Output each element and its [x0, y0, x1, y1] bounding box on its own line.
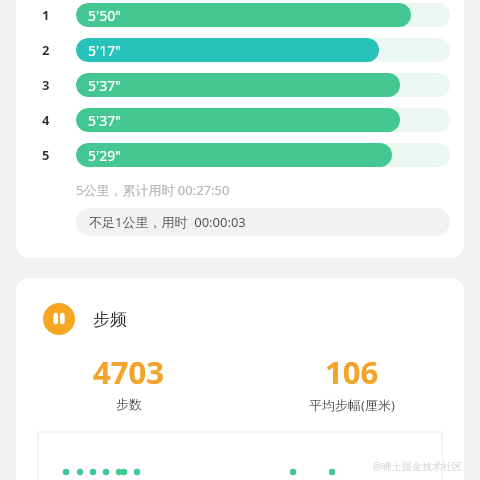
- staticText: 步频: [93, 309, 127, 330]
- button[interactable]: 2: [0, 37, 480, 63]
- staticText: 106: [325, 351, 379, 393]
- staticText: 5'50": [88, 6, 121, 25]
- staticText: 4703: [93, 351, 164, 393]
- staticText: 2: [42, 41, 50, 59]
- staticText: 平均步幅(厘米): [309, 396, 395, 414]
- staticText: 1: [42, 6, 50, 24]
- staticText: 5: [42, 146, 50, 164]
- button[interactable]: 3: [0, 72, 480, 98]
- staticText: 不足1公里，用时 00:00:03: [89, 213, 246, 231]
- button[interactable]: 5: [0, 142, 480, 168]
- button[interactable]: 4703: [16, 351, 240, 412]
- button[interactable]: 步频: [43, 303, 127, 335]
- button[interactable]: 1: [0, 2, 480, 28]
- staticText: 步数: [116, 396, 142, 412]
- button[interactable]: 106: [240, 351, 464, 414]
- staticText: 5'29": [88, 146, 121, 165]
- staticText: 5'37": [88, 111, 121, 130]
- staticText: 3: [42, 76, 50, 94]
- staticText: 5'37": [88, 76, 121, 95]
- staticText: @稀土掘金技术社区: [373, 459, 462, 473]
- other: 步频: [43, 303, 75, 335]
- button[interactable]: 不足1公里，用时 00:00:03: [76, 208, 450, 236]
- staticText: 5公里，累计用时 00:27:50: [76, 181, 230, 199]
- button[interactable]: 4: [0, 107, 480, 133]
- staticText: 5'17": [88, 41, 121, 60]
- staticText: 4: [42, 111, 50, 129]
